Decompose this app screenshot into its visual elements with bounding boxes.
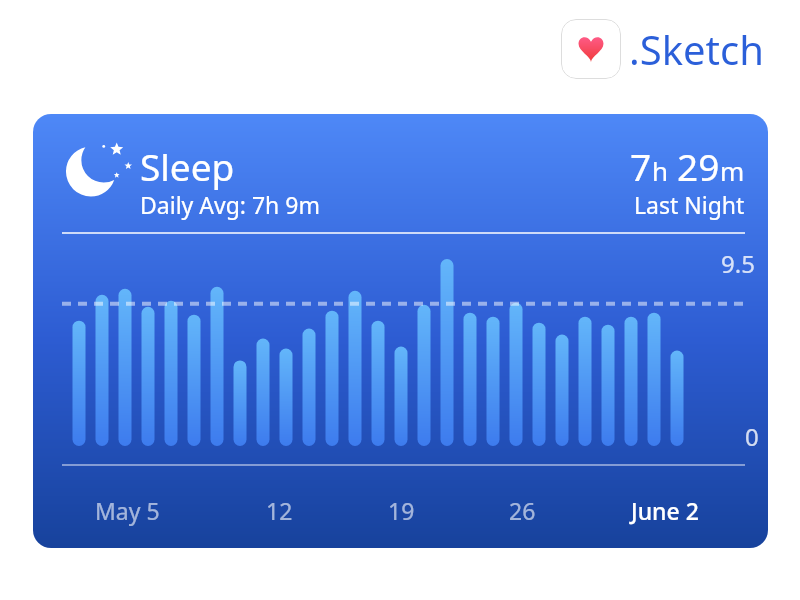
staticText: Sleep — [140, 141, 235, 191]
staticText: 29 — [677, 141, 720, 191]
staticText: m — [720, 153, 745, 188]
staticText: June 2 — [631, 495, 699, 526]
other: Sleep — [62, 132, 134, 204]
staticText: h — [652, 153, 669, 188]
staticText: 26 — [509, 495, 536, 526]
staticText: 12 — [266, 495, 293, 526]
staticText: 9.5 — [721, 247, 755, 280]
button[interactable]: Health heart icon — [561, 19, 764, 79]
staticText: Last Night — [634, 189, 745, 220]
staticText: .Sketch — [629, 22, 764, 76]
staticText: 19 — [388, 495, 415, 526]
staticText: Daily Avg: 7h 9m — [140, 189, 320, 220]
staticText: 7 — [630, 141, 652, 191]
other: Health heart icon — [561, 19, 621, 79]
button[interactable]: Sleep — [33, 114, 768, 548]
staticText: 0 — [745, 420, 759, 453]
staticText: May 5 — [95, 495, 160, 526]
